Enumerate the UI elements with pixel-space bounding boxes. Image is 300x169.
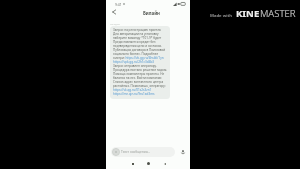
- button[interactable]: Текст сообщения...: [111, 147, 175, 157]
- staticText: Текст сообщения...: [121, 150, 151, 154]
- button[interactable]: Запрос на регистрацию проекта Для автори…: [110, 26, 170, 99]
- staticText: Билайн: [143, 10, 161, 16]
- button[interactable]: Send voice message: [178, 147, 188, 157]
- button[interactable]: Home: [143, 158, 154, 169]
- staticText: 9:41: [115, 2, 122, 7]
- staticText: MASTER: [260, 7, 296, 20]
- button[interactable]: Back: [159, 158, 170, 169]
- staticText: KINE: [236, 7, 260, 20]
- staticText: сегодня: [110, 22, 120, 25]
- button[interactable]: Recent apps: [127, 158, 138, 169]
- staticText: Made with: [210, 13, 233, 19]
- staticText: Запрос на регистрацию проекта Для автори…: [113, 28, 168, 96]
- button[interactable]: Back: [110, 8, 118, 16]
